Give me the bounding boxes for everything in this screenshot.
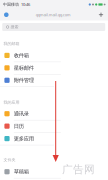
staticText: 我的应用 xyxy=(3,100,19,105)
button[interactable]: 星标邮件 xyxy=(0,62,108,74)
button[interactable]: 通讯录 xyxy=(0,107,108,120)
button[interactable]: 日历 xyxy=(0,120,108,132)
staticText: 10:46 xyxy=(21,2,30,7)
staticText: 附件管理 xyxy=(14,77,34,84)
staticText: 星标邮件 xyxy=(14,65,34,71)
button[interactable]: New tab xyxy=(95,9,106,20)
button[interactable]: 附件管理 xyxy=(0,74,108,86)
button[interactable]: 草稿箱 xyxy=(0,165,108,178)
staticText: qqmail.mail.qq.com xyxy=(36,12,71,17)
staticText: 日历 xyxy=(14,123,24,129)
staticText: 我的邮箱 xyxy=(3,41,19,46)
button[interactable]: 搜索 xyxy=(2,23,105,31)
staticText: 搜索 xyxy=(10,24,18,29)
staticText: 更多应用 xyxy=(14,135,34,142)
staticText: 中国移动 xyxy=(3,2,19,7)
staticText: 通讯录 xyxy=(14,110,29,117)
staticText: 收件箱 xyxy=(14,52,29,59)
staticText: 草稿箱 xyxy=(14,168,29,175)
staticText: 广告网 xyxy=(62,163,95,176)
button[interactable]: 更多应用 xyxy=(0,132,108,145)
button[interactable]: Site info xyxy=(2,9,11,20)
staticText: 文件夹 xyxy=(3,157,15,162)
button[interactable]: 收件箱 xyxy=(0,49,108,62)
